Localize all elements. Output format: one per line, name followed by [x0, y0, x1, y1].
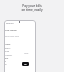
staticText: Pay — [24, 63, 27, 65]
staticText: Pay — [5, 57, 9, 60]
button[interactable]: Pay now — [22, 62, 29, 66]
staticText: Name — [5, 43, 11, 46]
staticText: in — [5, 63, 7, 66]
staticText: Pay your bills on time, easily — [0, 4, 64, 11]
staticText: Address — [5, 54, 13, 57]
staticText: Expiry — [5, 47, 11, 50]
staticText: Card number — [5, 29, 17, 32]
staticText: a — [5, 60, 7, 63]
staticText: Total — [24, 52, 29, 55]
staticText: Date — [5, 50, 10, 53]
staticText: 0000 0000 0000 — [5, 35, 19, 38]
staticText: Payment — [6, 22, 14, 24]
